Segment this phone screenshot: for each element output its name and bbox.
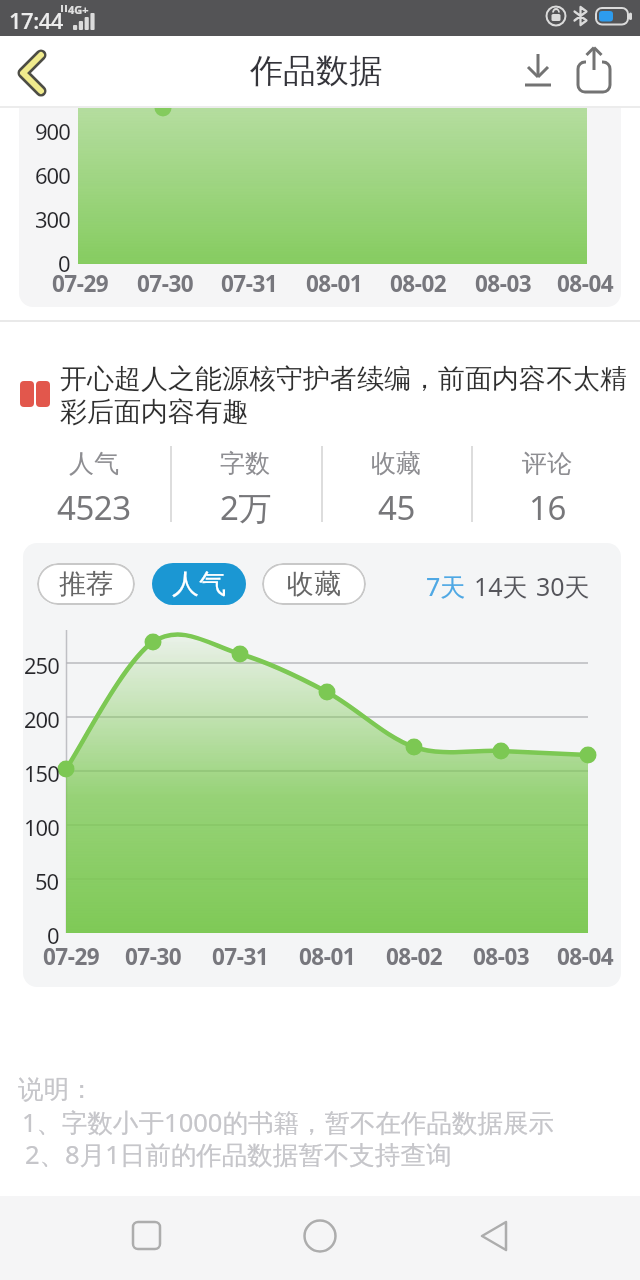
staticText: 14天 [474, 569, 528, 599]
button[interactable]: 人气 [152, 563, 246, 605]
button[interactable]: 收藏 [262, 563, 366, 605]
staticText: 0 [47, 920, 59, 946]
staticText: 07-30 [125, 941, 182, 969]
staticText: 2万 [220, 485, 271, 525]
button[interactable] [8, 44, 64, 100]
staticText: 07-29 [43, 941, 100, 969]
staticText: 08-01 [306, 268, 363, 296]
staticText: 收藏 [371, 448, 421, 478]
staticText: 人气 [172, 567, 226, 601]
button[interactable] [515, 48, 561, 96]
staticText: 150 [24, 758, 59, 784]
staticText: 16 [529, 485, 566, 525]
staticText: 作品数据 [250, 50, 382, 92]
staticText: 1、字数小于1000的书籍，暂不在作品数据展示 [22, 1105, 554, 1140]
staticText: 08-04 [557, 268, 614, 296]
staticText: 字数 [220, 448, 270, 478]
staticText: 08-03 [473, 941, 530, 969]
staticText: 说明： [18, 1073, 95, 1105]
staticText: 200 [24, 704, 59, 730]
staticText: 100 [24, 812, 59, 838]
staticText: 600 [35, 160, 70, 186]
staticText: 08-02 [386, 941, 443, 969]
staticText: 08-02 [390, 268, 447, 296]
staticText: 900 [35, 116, 70, 142]
staticText: 08-01 [299, 941, 356, 969]
button[interactable]: 14天 [466, 569, 536, 599]
staticText: 30天 [536, 569, 590, 599]
staticText: 4523 [57, 485, 131, 525]
button[interactable]: 30天 [528, 569, 598, 599]
staticText: 开心超人之能源核守护者续编，前面内容不太精 彩后面内容有趣 [60, 362, 627, 429]
staticText: 2、8月1日前的作品数据暂不支持查询 [25, 1137, 452, 1172]
staticText: 07-30 [137, 268, 194, 296]
staticText: 4G+ [68, 2, 89, 17]
staticText: 45 [378, 485, 415, 525]
staticText: 17:44 [9, 5, 63, 35]
staticText: 评论 [522, 448, 572, 478]
button[interactable] [460, 1201, 530, 1271]
staticText: 07-31 [212, 941, 269, 969]
staticText: 07-31 [221, 268, 278, 296]
staticText: 50 [35, 866, 59, 892]
staticText: 300 [35, 204, 70, 230]
button[interactable]: 推荐 [37, 563, 135, 605]
staticText: 人气 [69, 448, 119, 478]
staticText: 7天 [426, 569, 466, 599]
staticText: 收藏 [287, 567, 341, 601]
button[interactable] [285, 1201, 355, 1271]
staticText: 08-03 [475, 268, 532, 296]
button[interactable] [111, 1201, 181, 1271]
staticText: 08-04 [557, 941, 614, 969]
button[interactable] [572, 44, 620, 100]
staticText: 07-29 [52, 268, 109, 296]
staticText: 250 [24, 650, 59, 676]
button[interactable]: 7天 [416, 569, 476, 599]
staticText: 推荐 [59, 567, 113, 601]
staticText: 0 [58, 248, 70, 274]
